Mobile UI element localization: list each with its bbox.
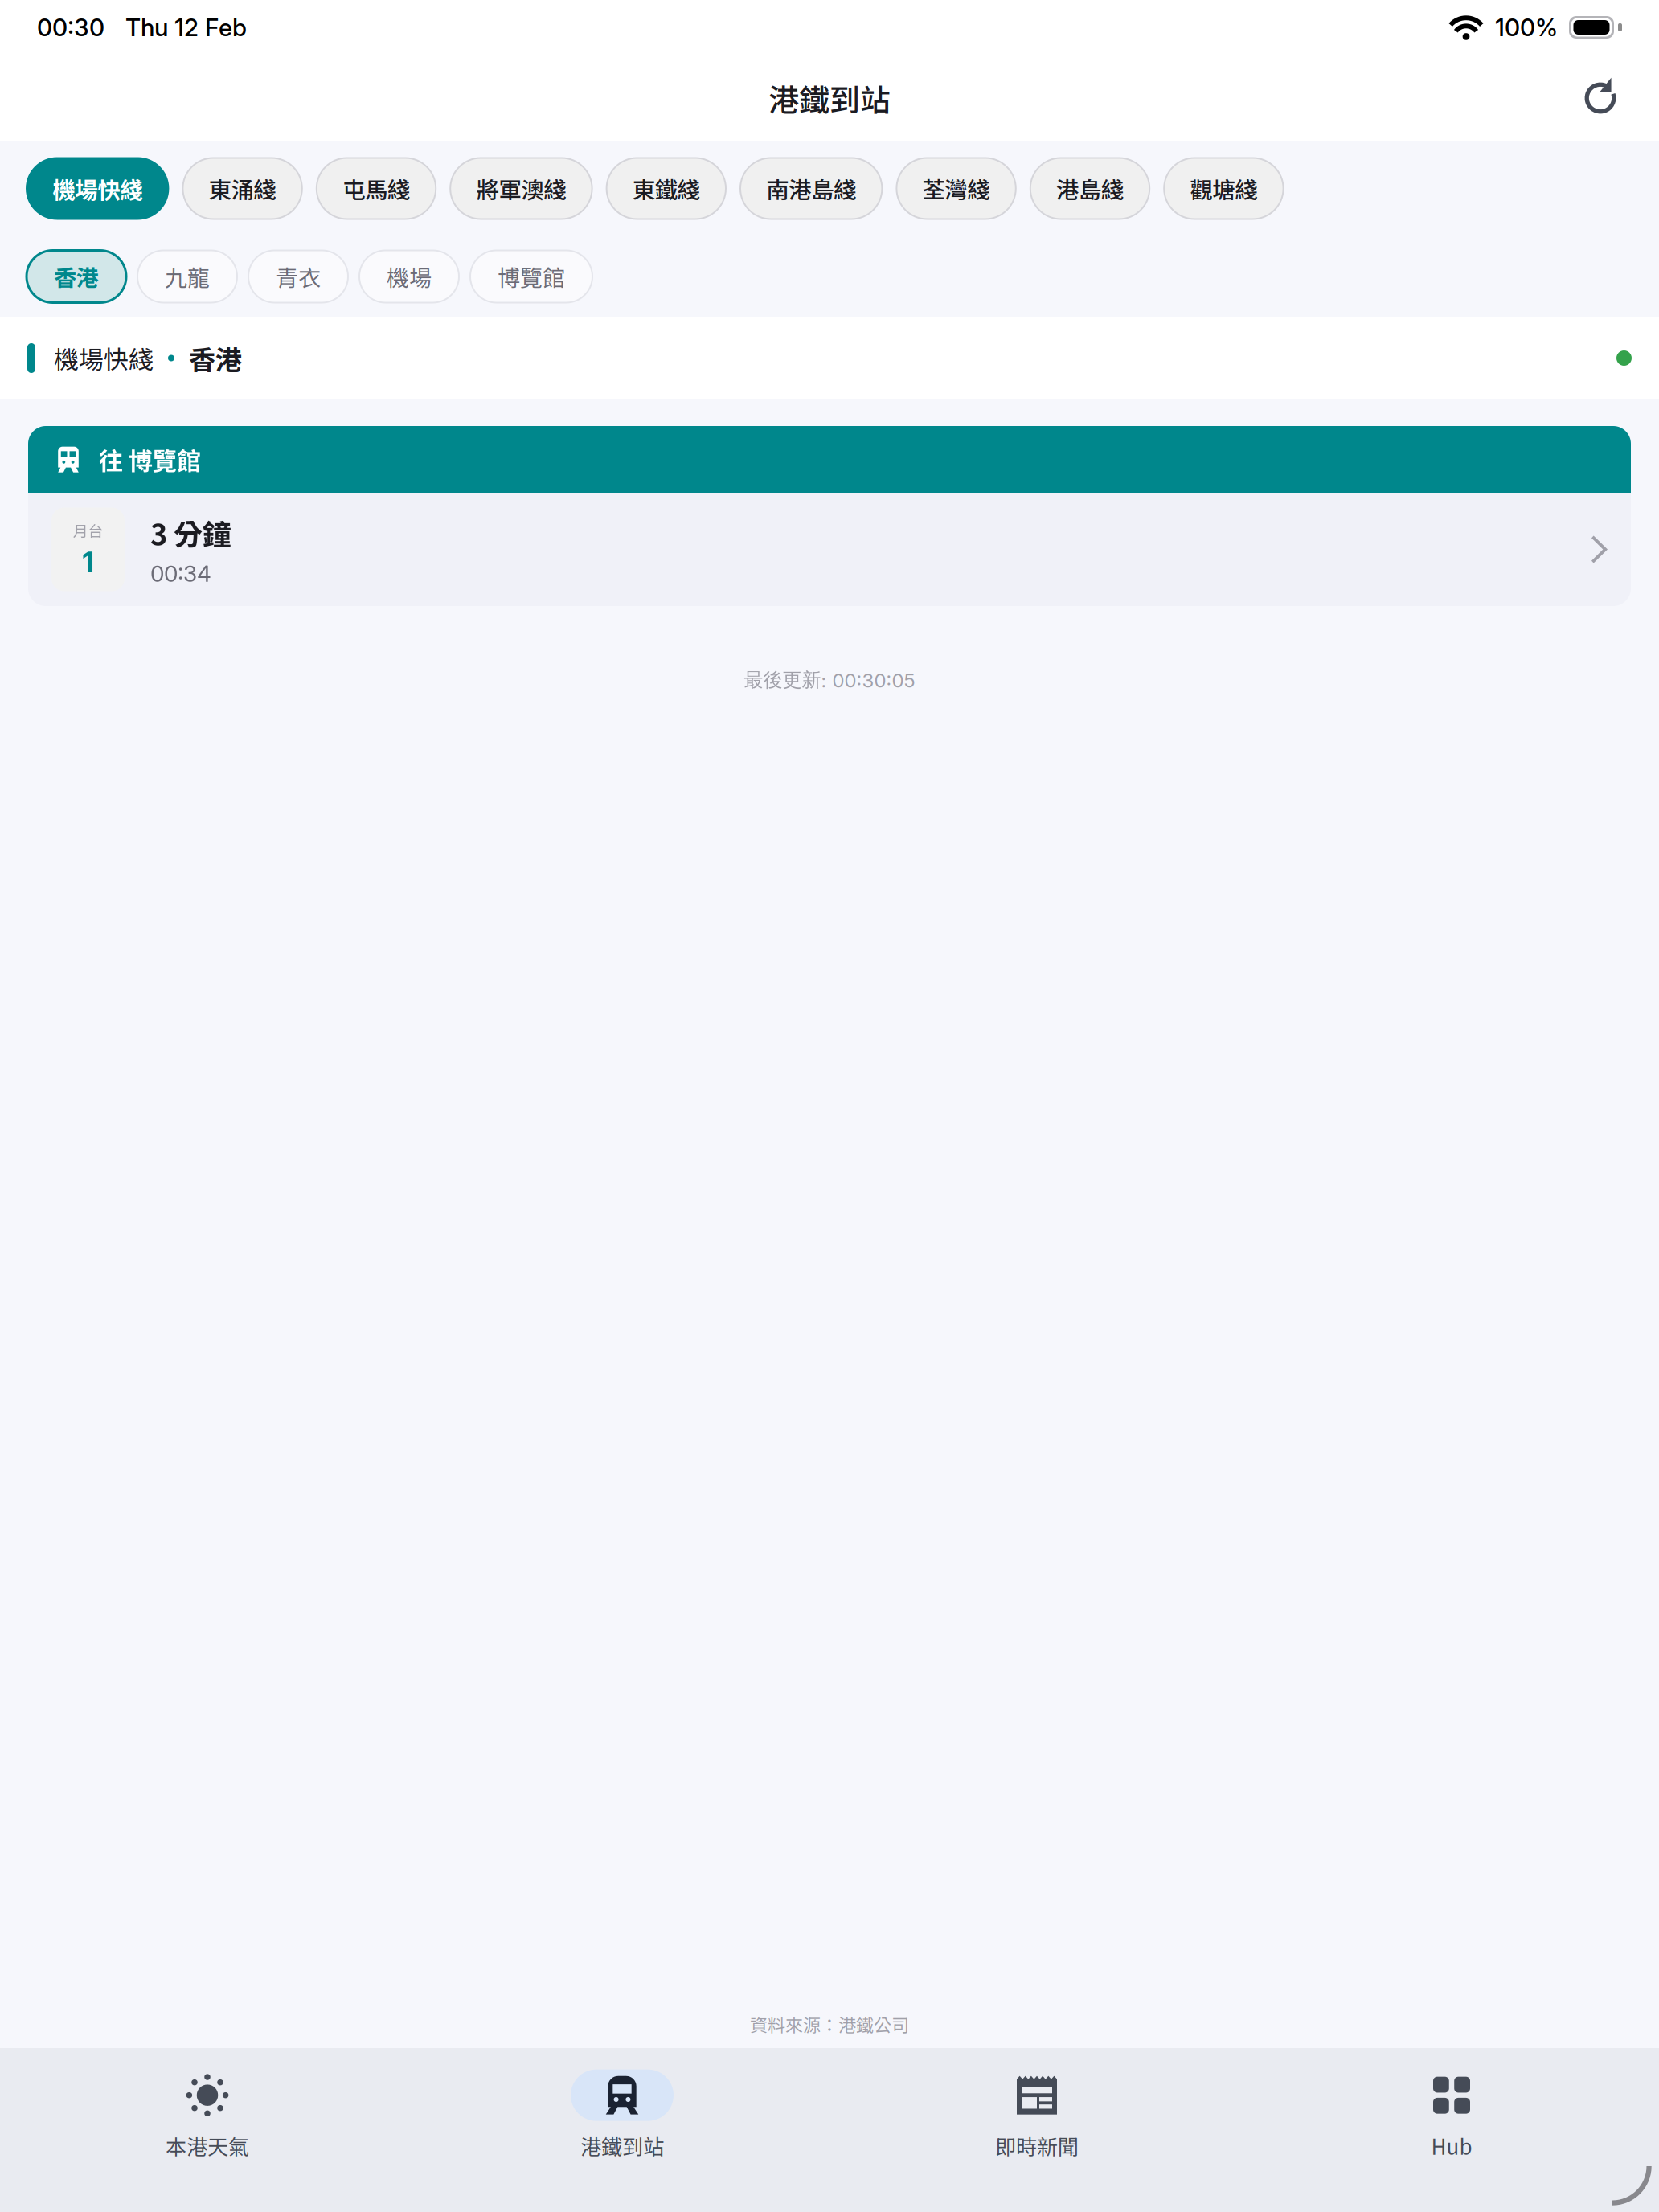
button[interactable]: 荃灣綫 bbox=[897, 158, 1016, 219]
button[interactable]: 青衣 bbox=[248, 250, 348, 303]
staticText: 機場快綫 bbox=[54, 340, 154, 376]
button[interactable]: 月台 bbox=[28, 493, 1631, 606]
button[interactable]: 南港島綫 bbox=[740, 158, 882, 219]
staticText: 機場 bbox=[387, 260, 432, 293]
button[interactable]: 東涌綫 bbox=[183, 158, 302, 219]
staticText: 即時新聞 bbox=[995, 2131, 1079, 2161]
staticText: 屯馬綫 bbox=[342, 172, 410, 205]
staticText: 往 博覽館 bbox=[99, 442, 201, 477]
staticText: 00:30 bbox=[37, 13, 104, 42]
staticText: 月台 bbox=[73, 519, 103, 541]
staticText: 00:34 bbox=[150, 560, 211, 587]
button[interactable]: 博覽館 bbox=[470, 250, 592, 303]
button[interactable]: 屯馬綫 bbox=[317, 158, 436, 219]
button[interactable]: 港鐵到站 bbox=[415, 2043, 829, 2212]
staticText: 3 分鐘 bbox=[150, 512, 231, 553]
staticText: 100% bbox=[1495, 13, 1558, 42]
staticText: 港鐵到站 bbox=[580, 2131, 664, 2161]
staticText: 最後更新: 00:30:05 bbox=[744, 668, 915, 692]
staticText: 1 bbox=[82, 545, 94, 580]
staticText: 資料來源：港鐵公司 bbox=[750, 2011, 909, 2037]
staticText: 香港 bbox=[54, 260, 99, 293]
button[interactable]: 港島綫 bbox=[1030, 158, 1150, 219]
staticText: Hub bbox=[1431, 2131, 1472, 2161]
staticText: 九龍 bbox=[165, 260, 210, 293]
staticText: 東鐵綫 bbox=[632, 172, 700, 205]
button[interactable]: Hub bbox=[1244, 2043, 1659, 2212]
button[interactable]: 九龍 bbox=[137, 250, 237, 303]
button[interactable]: 機場快綫 bbox=[27, 158, 168, 219]
button[interactable]: 重新整理 bbox=[1569, 67, 1632, 129]
staticText: 香港 bbox=[189, 339, 242, 377]
staticText: Thu 12 Feb bbox=[125, 13, 247, 42]
button[interactable]: 本港天氣 bbox=[0, 2043, 415, 2212]
staticText: 東涌綫 bbox=[209, 172, 276, 205]
staticText: 港島綫 bbox=[1056, 172, 1124, 205]
staticText: 將軍澳綫 bbox=[476, 172, 566, 205]
button[interactable]: 即時新聞 bbox=[829, 2043, 1244, 2212]
button[interactable]: 機場 bbox=[359, 250, 459, 303]
button[interactable]: 將軍澳綫 bbox=[450, 158, 592, 219]
staticText: 港鐵到站 bbox=[768, 76, 891, 120]
staticText: 南港島綫 bbox=[766, 172, 856, 205]
staticText: 博覽館 bbox=[498, 260, 565, 293]
staticText: 機場快綫 bbox=[52, 172, 142, 205]
button[interactable]: 東鐵綫 bbox=[607, 158, 726, 219]
staticText: 本港天氣 bbox=[166, 2131, 249, 2161]
button[interactable]: 觀塘綫 bbox=[1164, 158, 1283, 219]
staticText: 觀塘綫 bbox=[1190, 172, 1257, 205]
staticText: 青衣 bbox=[276, 260, 321, 293]
staticText: 荃灣綫 bbox=[922, 172, 990, 205]
button[interactable]: 香港 bbox=[27, 250, 126, 303]
